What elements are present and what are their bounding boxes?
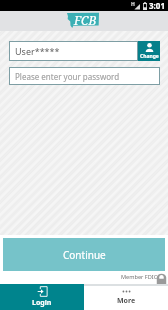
button[interactable]: Login [0,284,84,310]
staticText: H [131,1,135,8]
button[interactable]: User***** [9,41,138,61]
staticText: More [117,296,136,306]
staticText: 3:01 [149,0,165,11]
button[interactable]: Please enter your password [9,67,160,85]
staticText: Member FDIC [121,273,158,281]
other: Login [37,286,48,297]
staticText: User***** [15,45,60,57]
staticText: Login [32,298,52,308]
staticText: Please enter your password [15,71,120,82]
button[interactable]: Change [138,41,160,61]
staticText: Change [140,53,159,60]
staticText: FCB [74,12,97,28]
other: Secure [156,272,167,284]
button[interactable]: Continue [3,238,165,271]
button[interactable]: More [84,284,168,310]
staticText: Continue [63,248,106,262]
